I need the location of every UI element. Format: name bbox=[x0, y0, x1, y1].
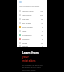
staticText: Shared bbox=[22, 45, 28, 47]
staticText: Gold badges bbox=[22, 26, 33, 28]
staticText: 22 bbox=[41, 42, 44, 44]
button[interactable]: Gold badges bbox=[17, 25, 47, 29]
staticText: 9 bbox=[42, 38, 44, 40]
staticText: your mistakes bbox=[22, 55, 43, 63]
staticText: 3 bbox=[42, 26, 44, 28]
button[interactable]: Minutes bbox=[17, 17, 47, 21]
button[interactable]: Mistakes bbox=[17, 37, 47, 41]
staticText: Lessons done bbox=[22, 10, 34, 12]
button[interactable]: Level bbox=[17, 29, 47, 33]
staticText: 7 bbox=[42, 30, 44, 32]
staticText: 5 bbox=[42, 45, 44, 47]
staticText: Go through the words you got wrong and t… bbox=[22, 64, 43, 72]
staticText: New words bbox=[22, 14, 32, 16]
staticText: Your progress this week bbox=[19, 5, 40, 7]
staticText: Day streak bbox=[22, 22, 31, 24]
button[interactable]: Lessons done bbox=[17, 9, 47, 13]
staticText: Minutes bbox=[22, 18, 29, 20]
button[interactable]: Saved bbox=[17, 41, 47, 45]
staticText: 540 bbox=[40, 14, 44, 16]
staticText: 128 bbox=[40, 10, 44, 12]
button[interactable]: Completed bbox=[17, 33, 47, 37]
staticText: Learn from bbox=[22, 51, 39, 55]
staticText: 12 bbox=[41, 22, 44, 24]
staticText: Mistakes bbox=[22, 38, 30, 40]
staticText: 45 bbox=[41, 34, 44, 36]
staticText: Saved bbox=[22, 42, 28, 44]
staticText: 96 bbox=[41, 18, 44, 20]
staticText: Level bbox=[22, 30, 27, 32]
button[interactable]: New words bbox=[17, 13, 47, 17]
button[interactable]: Shared bbox=[17, 45, 47, 47]
button[interactable]: Day streak bbox=[17, 21, 47, 25]
staticText: Completed bbox=[22, 34, 32, 36]
button[interactable]: Badge bbox=[19, 1, 22, 3]
